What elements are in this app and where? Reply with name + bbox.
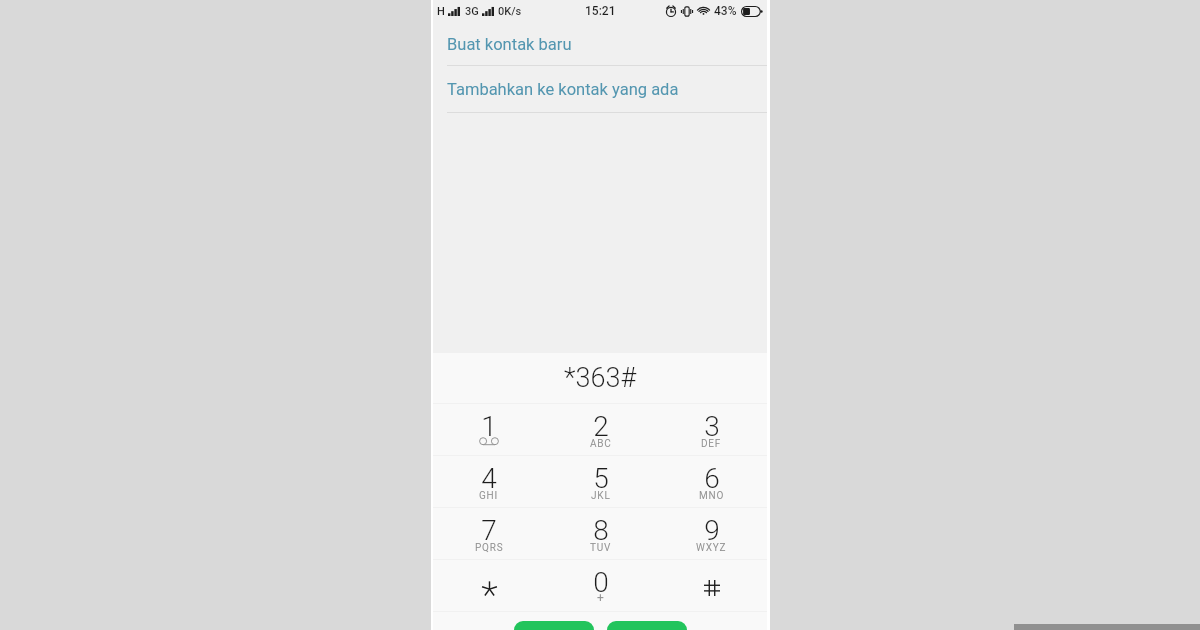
staticText: H [437, 5, 445, 18]
staticText: JKL [591, 490, 611, 502]
staticText: 3G [465, 5, 479, 18]
staticText: 2 [593, 410, 609, 443]
staticText: MNO [699, 490, 725, 502]
button[interactable]: Pound [656, 560, 767, 611]
button[interactable]: Call with SIM 2 [607, 621, 687, 630]
button[interactable]: 2 [545, 404, 656, 455]
staticText: Tambahkan ke kontak yang ada [447, 80, 679, 99]
button[interactable]: 0 [545, 560, 656, 611]
staticText: 1 [481, 410, 497, 443]
staticText: 8 [593, 514, 609, 547]
staticText: 7 [481, 514, 497, 547]
button[interactable]: 5 [545, 456, 656, 507]
staticText: 0 [593, 566, 609, 599]
button[interactable]: Buat kontak baru [433, 22, 767, 66]
button[interactable]: Call with SIM 1 [514, 621, 594, 630]
button[interactable]: Tambahkan ke kontak yang ada [433, 66, 767, 113]
staticText: 15:21 [585, 4, 616, 18]
staticText: 6 [704, 462, 720, 495]
staticText: 43% [714, 4, 737, 18]
button[interactable]: 3 [656, 404, 767, 455]
button[interactable]: 9 [656, 508, 767, 559]
staticText: 3 [704, 410, 720, 443]
staticText: 4 [481, 462, 497, 495]
staticText: 0K/s [498, 5, 522, 18]
button[interactable]: 7 [433, 508, 545, 559]
button[interactable]: 6 [656, 456, 767, 507]
staticText: TUV [590, 542, 612, 554]
staticText: 5 [593, 462, 609, 495]
staticText: DEF [701, 438, 722, 450]
staticText: *363# [564, 362, 637, 394]
button[interactable]: Star [433, 560, 545, 611]
button[interactable]: 8 [545, 508, 656, 559]
staticText: GHI [479, 490, 499, 502]
staticText: 9 [704, 514, 720, 547]
staticText: ABC [590, 438, 612, 450]
staticText: PQRS [475, 542, 504, 554]
staticText: WXYZ [696, 542, 727, 554]
staticText: + [597, 591, 604, 605]
button[interactable]: 4 [433, 456, 545, 507]
staticText: Buat kontak baru [447, 35, 572, 54]
button[interactable]: 1 [433, 404, 545, 455]
